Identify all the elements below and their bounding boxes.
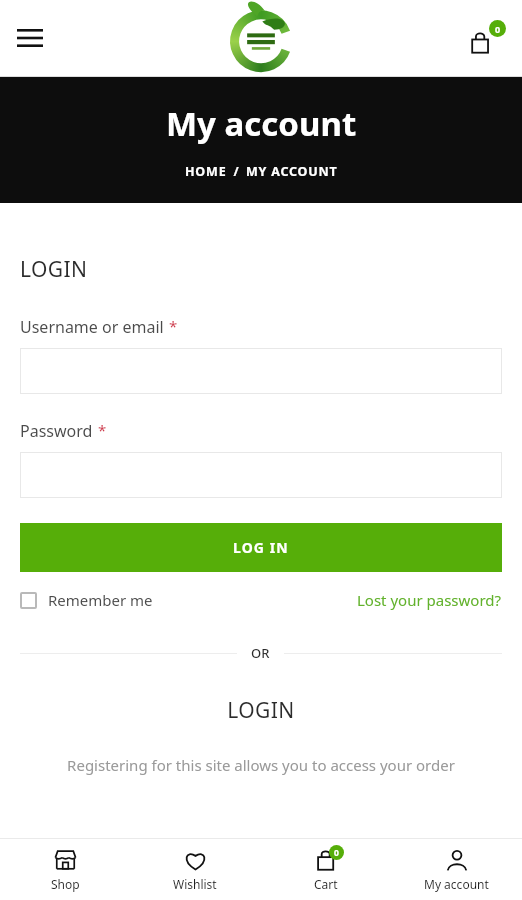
button[interactable]: Shop bbox=[0, 839, 130, 900]
button[interactable]: Menu bbox=[8, 16, 52, 60]
staticText: 0 bbox=[334, 847, 339, 859]
button[interactable]: 0 bbox=[260, 839, 391, 900]
button[interactable]: Wishlist bbox=[130, 839, 260, 900]
staticText: * bbox=[98, 420, 107, 440]
staticText: Wishlist bbox=[173, 876, 217, 892]
staticText: My account bbox=[166, 101, 357, 146]
button[interactable]: Lost your password? bbox=[357, 590, 502, 610]
staticText: Shop bbox=[51, 876, 80, 892]
staticText: HOME bbox=[185, 163, 227, 180]
button[interactable] bbox=[20, 348, 502, 394]
button[interactable]: Cart bbox=[464, 14, 512, 62]
staticText: Username or email bbox=[20, 316, 164, 338]
staticText: / bbox=[227, 163, 246, 180]
staticText: LOG IN bbox=[233, 538, 289, 557]
staticText: LOGIN bbox=[20, 255, 88, 284]
button[interactable]: Remember me bbox=[20, 590, 153, 610]
button[interactable]: My account bbox=[391, 839, 522, 900]
staticText: Lost your password? bbox=[357, 590, 502, 610]
button[interactable]: HOME bbox=[185, 163, 227, 180]
staticText: MY ACCOUNT bbox=[246, 163, 338, 180]
staticText: Remember me bbox=[48, 590, 153, 610]
button[interactable] bbox=[20, 452, 502, 498]
staticText: OR bbox=[251, 644, 270, 662]
staticText: 0 bbox=[495, 23, 501, 35]
staticText: Cart bbox=[314, 876, 338, 892]
staticText: LOGIN bbox=[20, 696, 502, 725]
staticText: Registering for this site allows you to … bbox=[20, 755, 502, 775]
staticText: * bbox=[169, 316, 178, 336]
staticText: My account bbox=[424, 876, 489, 892]
button[interactable]: LOG IN bbox=[20, 523, 502, 572]
staticText: Password bbox=[20, 420, 93, 442]
